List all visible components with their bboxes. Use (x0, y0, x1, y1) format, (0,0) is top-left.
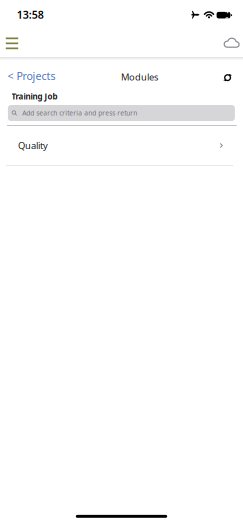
button[interactable]: Cloud sync (216, 26, 243, 57)
button[interactable]: Quality (0, 126, 243, 165)
staticText: 13:58 (17, 8, 44, 22)
button[interactable]: Refresh (215, 60, 243, 88)
staticText: < Projects (7, 69, 55, 83)
button[interactable]: Menu (0, 26, 26, 57)
staticText: Training Job (12, 91, 58, 102)
button[interactable]: < Projects (0, 57, 63, 91)
staticText: Modules (121, 71, 158, 83)
staticText: Add search criteria and press return (22, 109, 137, 117)
staticText: 48 (225, 6, 229, 24)
staticText: Quality (18, 139, 48, 152)
